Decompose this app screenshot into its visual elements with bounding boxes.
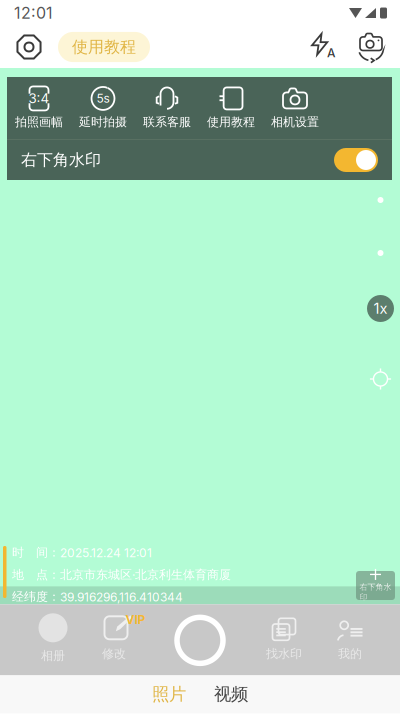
button[interactable]: 我的 [320, 617, 380, 662]
staticText: 使用教程 [207, 114, 255, 129]
staticText: 延时拍摄 [79, 114, 127, 129]
button[interactable]: 1x [367, 295, 394, 322]
staticText: 右下角水印 [21, 150, 101, 170]
button[interactable]: 使用教程 [58, 32, 150, 62]
button[interactable]: 视频 [200, 675, 262, 713]
button[interactable]: Switch camera [356, 32, 386, 62]
staticText: A [327, 46, 336, 60]
button[interactable]: 5s [71, 77, 135, 139]
staticText: 视频 [214, 683, 248, 705]
staticText: 相机设置 [271, 114, 319, 129]
button[interactable]: 照片 [138, 675, 200, 713]
button[interactable]: Shooting mode [12, 30, 46, 64]
staticText: 联系客服 [143, 114, 191, 129]
staticText: VIP [125, 612, 145, 627]
staticText: 地 点：北京市东城区·北京利生体育商厦 [12, 567, 231, 582]
button[interactable]: 找水印 [254, 617, 314, 662]
staticText: 拍照画幅 [15, 114, 63, 129]
staticText: 照片 [152, 683, 186, 705]
button[interactable]: 相册 [23, 615, 83, 661]
staticText: 5s [96, 91, 109, 106]
button[interactable]: 使用教程 [199, 77, 263, 139]
staticText: 我的 [338, 646, 362, 661]
button[interactable]: Add watermark [356, 571, 395, 600]
staticText: 右下角水印 [359, 582, 391, 602]
staticText: 1x [373, 300, 387, 317]
staticText: 时 间：2025.12.24 12:01 [12, 545, 152, 560]
button[interactable]: Flash auto [308, 32, 340, 62]
staticText: 修改 [102, 646, 126, 661]
button[interactable]: 相机设置 [263, 77, 327, 139]
button[interactable]: 3:4 [7, 77, 71, 139]
staticText: 12:01 [14, 3, 53, 23]
staticText: 相册 [41, 648, 65, 663]
staticText: 使用教程 [72, 37, 136, 57]
button[interactable]: VIP [95, 613, 155, 659]
button[interactable]: Shutter [172, 612, 228, 668]
staticText: 3:4 [28, 90, 49, 106]
button[interactable]: 右下角水印 [7, 140, 392, 180]
staticText: 找水印 [266, 646, 302, 661]
staticText: 经纬度：39.916296,116.410344 [12, 589, 183, 604]
button[interactable]: 联系客服 [135, 77, 199, 139]
